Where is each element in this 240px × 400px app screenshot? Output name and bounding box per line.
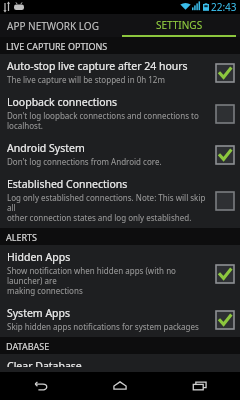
button[interactable]: Hidden Apps	[0, 245, 240, 301]
button[interactable]: Android System	[0, 136, 240, 172]
staticText: Log only established connections. Note: …	[7, 192, 211, 223]
button[interactable]: Clear Database	[0, 354, 240, 372]
staticText: DATABASE	[6, 340, 50, 352]
staticText: Clear Database	[7, 359, 82, 367]
staticText: APP NETWORK LOG	[7, 19, 99, 33]
staticText: Android System	[7, 141, 85, 155]
button[interactable]: Unchecked	[215, 104, 234, 123]
button[interactable]: Home	[80, 372, 160, 400]
staticText: Don't log loopback connections and conne…	[7, 110, 199, 131]
staticText: ALERTS	[6, 231, 38, 243]
button[interactable]: Back	[0, 372, 80, 400]
button[interactable]: Checked	[215, 145, 234, 164]
button[interactable]: Checked	[215, 264, 234, 283]
button[interactable]: Checked	[215, 63, 234, 82]
staticText: System Apps	[7, 306, 71, 320]
staticText: Hidden Apps	[7, 250, 71, 264]
staticText: Loopback connections	[7, 95, 118, 109]
staticText: Don't log connections from Android core.	[7, 156, 162, 167]
staticText: SETTINGS	[156, 18, 203, 32]
button[interactable]: Checked	[215, 310, 234, 329]
button[interactable]: System Apps	[0, 301, 240, 337]
button[interactable]: Established Connections	[0, 172, 240, 228]
staticText: Auto-stop live capture after 24 hours	[7, 59, 188, 73]
staticText: Show notification when hidden apps (with…	[7, 265, 211, 296]
button[interactable]: Recent apps	[160, 372, 240, 400]
button[interactable]: APP NETWORK LOG	[0, 14, 118, 37]
staticText: LIVE CAPTURE OPTIONS	[6, 40, 108, 52]
staticText: Skip hidden apps notifications for syste…	[7, 321, 199, 332]
button[interactable]: SETTINGS	[118, 14, 240, 37]
button[interactable]: Unchecked	[215, 191, 234, 210]
staticText: The live capture will be stopped in 0h 1…	[7, 74, 165, 85]
button[interactable]: Loopback connections	[0, 90, 240, 136]
staticText: Established Connections	[7, 177, 128, 191]
staticText: 22:43	[211, 0, 237, 14]
button[interactable]: Auto-stop live capture after 24 hours	[0, 54, 240, 90]
